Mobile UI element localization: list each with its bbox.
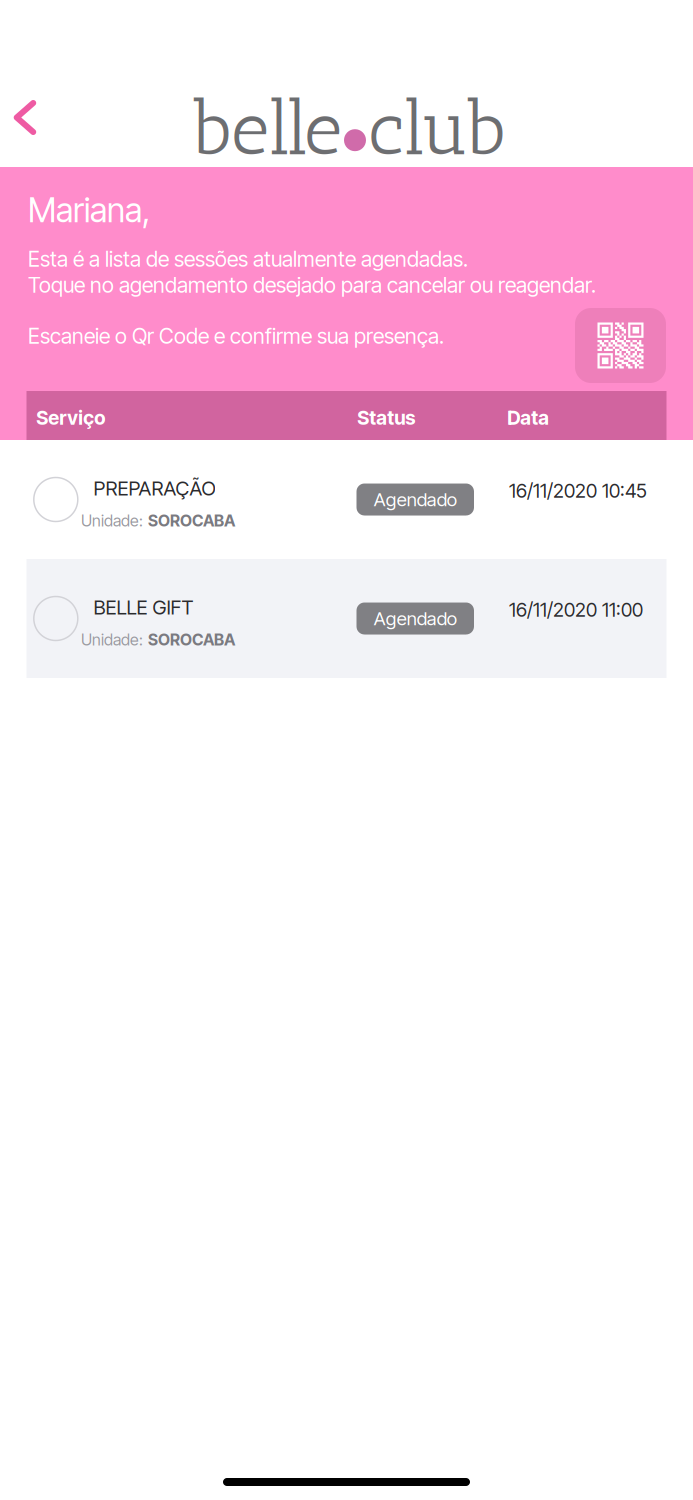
staticText: Esta é a lista de sessões atualmente age… <box>28 246 468 272</box>
staticText: club <box>368 84 506 173</box>
staticText: 16/11/2020 10:45 <box>509 479 647 502</box>
staticText: Agendado <box>374 607 457 630</box>
staticText: SOROCABA <box>148 630 235 649</box>
button[interactable]: Back <box>3 89 48 146</box>
staticText: Toque no agendamento desejado para cance… <box>28 272 596 298</box>
staticText: Agendado <box>374 488 457 511</box>
staticText: BELLE GIFT <box>93 595 193 619</box>
staticText: Unidade: <box>81 511 143 530</box>
staticText: PREPARAÇÃO <box>93 476 215 500</box>
staticText: Data <box>507 406 549 429</box>
staticText: Unidade: <box>81 630 143 649</box>
button[interactable]: PREPARAÇÃO <box>26 440 666 559</box>
button[interactable]: QR code <box>575 308 666 383</box>
staticText: SOROCABA <box>148 511 235 530</box>
staticText: Status <box>357 406 415 429</box>
staticText: Serviço <box>36 406 105 429</box>
staticText: 16/11/2020 11:00 <box>509 598 643 621</box>
staticText: belle <box>190 84 342 173</box>
staticText: Escaneie o Qr Code e confirme sua presen… <box>28 323 444 349</box>
staticText: Mariana, <box>28 190 150 230</box>
button[interactable]: BELLE GIFT <box>26 559 666 678</box>
